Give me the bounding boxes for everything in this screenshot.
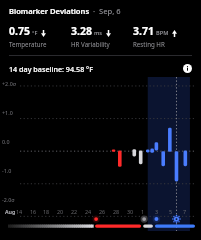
staticText: 0.75 [9, 24, 30, 38]
staticText: 30 [127, 208, 134, 215]
staticText: 1 [141, 208, 145, 215]
staticText: 3.71 [133, 24, 154, 38]
staticText: 14 [16, 208, 23, 215]
staticText: 5 [169, 208, 173, 215]
staticText: Sep, 6 [99, 6, 121, 16]
staticText: 3 [155, 208, 159, 215]
staticText: -1.0 [2, 167, 12, 174]
staticText: ms [94, 29, 103, 37]
staticText: Aug [5, 208, 16, 215]
staticText: HR Variability [71, 40, 110, 48]
staticText: 26 [99, 208, 106, 215]
staticText: 18 [43, 208, 50, 215]
button[interactable]: +2.0σ [0, 77, 201, 240]
staticText: BPM [156, 29, 169, 37]
staticText: -2.0σ [2, 196, 15, 203]
staticText: 7 [183, 208, 187, 215]
staticText: 0.0 [2, 138, 10, 145]
staticText: · [93, 6, 96, 16]
staticText: 22 [71, 208, 78, 215]
staticText: 28 [113, 208, 120, 215]
button[interactable]: 0.75 [9, 24, 71, 48]
staticText: +1.0 [2, 109, 13, 116]
staticText: 24 [85, 208, 92, 215]
button[interactable]: 3.71 [133, 24, 195, 48]
button[interactable]: 3.28 [71, 24, 133, 48]
staticText: Temperature [9, 40, 47, 48]
staticText: Resting HR [133, 40, 165, 48]
staticText: 16 [30, 208, 37, 215]
staticText: Biomarker Deviations [9, 6, 90, 16]
staticText: 14 day baseline: 94.58 °F [9, 64, 93, 74]
staticText: 3.28 [71, 24, 92, 38]
staticText: 20 [57, 208, 64, 215]
staticText: °F [32, 29, 38, 37]
staticText: +2.0σ [2, 80, 17, 87]
button[interactable]: Info [181, 62, 194, 75]
